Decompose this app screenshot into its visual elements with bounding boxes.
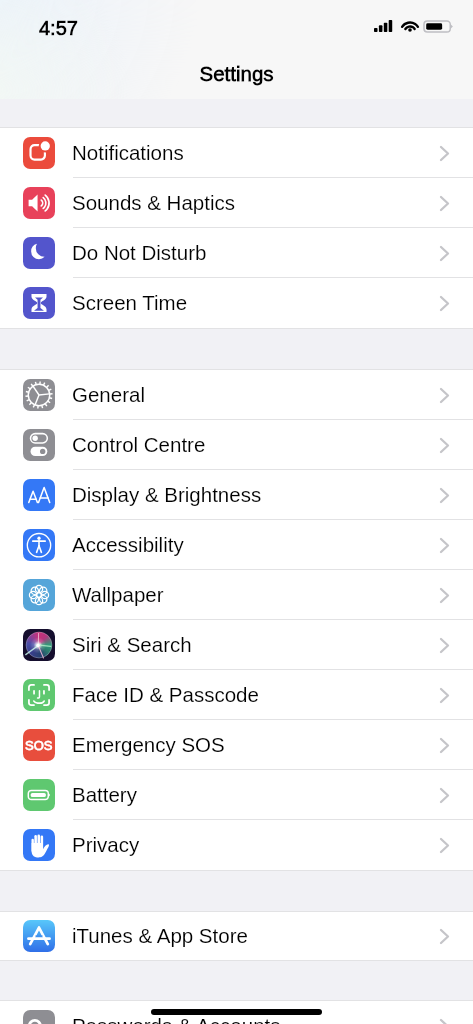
staticText: Control Centre [72, 433, 206, 456]
button[interactable]: Battery [0, 770, 473, 820]
button[interactable]: General [0, 370, 473, 420]
staticText: Passwords & Accounts [72, 1014, 281, 1024]
button[interactable]: Do Not Disturb [0, 228, 473, 278]
button[interactable]: Privacy [0, 820, 473, 870]
staticText: Face ID & Passcode [72, 683, 259, 706]
staticText: SOS [25, 738, 53, 753]
button[interactable]: Siri & Search [0, 620, 473, 670]
button[interactable]: Display & Brightness [0, 470, 473, 520]
staticText: Wallpaper [72, 583, 164, 606]
button[interactable]: Accessibility [0, 520, 473, 570]
staticText: Screen Time [72, 291, 188, 314]
button[interactable]: Passwords & Accounts [0, 1001, 473, 1024]
staticText: Accessibility [72, 533, 184, 556]
staticText: Do Not Disturb [72, 241, 207, 264]
staticText: Settings [199, 62, 274, 85]
button[interactable]: SOS [0, 720, 473, 770]
button[interactable]: Face ID & Passcode [0, 670, 473, 720]
button[interactable]: Notifications [0, 128, 473, 178]
staticText: 4:57 [39, 17, 78, 39]
staticText: iTunes & App Store [72, 924, 248, 947]
staticText: Privacy [72, 833, 140, 856]
button[interactable]: iTunes & App Store [0, 912, 473, 960]
staticText: Display & Brightness [72, 483, 262, 506]
staticText: General [72, 383, 145, 406]
staticText: Emergency SOS [72, 733, 225, 756]
staticText: Siri & Search [72, 633, 192, 656]
button[interactable]: Screen Time [0, 278, 473, 328]
button[interactable]: Control Centre [0, 420, 473, 470]
staticText: Battery [72, 783, 137, 806]
staticText: Notifications [72, 141, 184, 164]
staticText: Sounds & Haptics [72, 191, 235, 214]
button[interactable]: Wallpaper [0, 570, 473, 620]
button[interactable]: Sounds & Haptics [0, 178, 473, 228]
